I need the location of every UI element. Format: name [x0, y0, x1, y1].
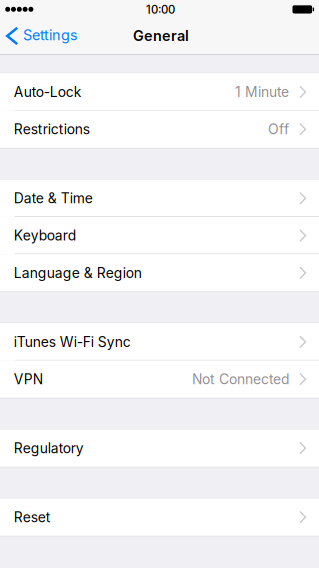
button[interactable]: Auto-Lock [0, 73, 319, 111]
button[interactable]: Language & Region [0, 254, 319, 291]
button[interactable]: Regulatory [0, 429, 319, 467]
staticText: Auto-Lock [14, 84, 82, 100]
staticText: 1 Minute [235, 84, 289, 100]
button[interactable]: iTunes Wi-Fi Sync [0, 323, 319, 360]
button[interactable]: VPN [0, 360, 319, 398]
staticText: Regulatory [14, 440, 84, 457]
button[interactable]: Settings [0, 20, 84, 54]
staticText: Keyboard [14, 227, 76, 244]
button[interactable]: Restrictions [0, 111, 319, 148]
staticText: Language & Region [14, 264, 142, 281]
staticText: Date & Time [14, 190, 93, 207]
staticText: 10:00 [146, 3, 175, 16]
staticText: Not Connected [192, 371, 289, 388]
button[interactable]: Keyboard [0, 217, 319, 254]
staticText: Restrictions [14, 121, 90, 138]
staticText: General [133, 27, 189, 44]
staticText: Settings [23, 26, 78, 44]
staticText: Reset [14, 509, 51, 526]
button[interactable]: Date & Time [0, 180, 319, 217]
staticText: iTunes Wi-Fi Sync [14, 333, 131, 350]
staticText: VPN [14, 371, 43, 388]
staticText: Off [268, 121, 289, 138]
button[interactable]: Reset [0, 498, 319, 536]
